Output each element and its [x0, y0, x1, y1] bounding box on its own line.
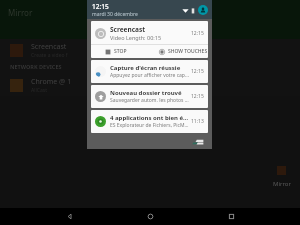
- staticText: NETWORK DEVICES: [10, 63, 62, 70]
- button[interactable]: Capture d'écran réussie: [91, 60, 208, 83]
- button[interactable]: Home: [138, 208, 162, 225]
- staticText: Screencast: [110, 25, 146, 34]
- staticText: 12:15: [191, 93, 204, 100]
- staticText: Create a video f: [31, 52, 68, 59]
- button[interactable]: Chrome @ 1: [0, 74, 300, 96]
- staticText: Capture d'écran réussie: [110, 64, 181, 72]
- button[interactable]: Clear all notifications: [192, 135, 204, 147]
- staticText: SHOW TOUCHES: [168, 48, 208, 55]
- staticText: Appuyez pour afficher votre capture d'éc…: [110, 72, 189, 79]
- staticText: Screencast: [31, 42, 67, 52]
- staticText: 12:15: [191, 30, 204, 37]
- button[interactable]: Recent apps: [219, 208, 243, 225]
- staticText: mardi 30 décembre: [92, 11, 138, 18]
- button[interactable]: Screencast: [0, 39, 300, 61]
- staticText: Chrome @ 1: [31, 77, 72, 87]
- staticText: 4 applications ont bien été mises à jour: [110, 114, 189, 122]
- button[interactable]: Screencast: [91, 21, 208, 58]
- staticText: ES Explorateur de Fichiers, PicMotion – …: [110, 122, 189, 129]
- button[interactable]: SHOW TOUCHES: [149, 45, 208, 58]
- staticText: Mirror: [8, 7, 33, 18]
- staticText: 12:15: [191, 68, 204, 75]
- staticText: Video Length: 00:15: [110, 34, 162, 41]
- staticText: Mirror: [273, 180, 291, 188]
- button[interactable]: User profile: [198, 5, 208, 15]
- staticText: STOP: [114, 48, 127, 55]
- staticText: Sauvegarder autom. les photos dans Scree…: [110, 97, 189, 104]
- button[interactable]: [277, 166, 286, 177]
- staticText: 12:15: [92, 2, 109, 11]
- staticText: Nouveau dossier trouvé: [110, 89, 182, 97]
- button[interactable]: STOP: [91, 45, 149, 58]
- staticText: AllCast: [31, 87, 47, 94]
- button[interactable]: 4 applications ont bien été mises à jour: [91, 110, 208, 133]
- button[interactable]: Back: [57, 208, 81, 225]
- button[interactable]: Nouveau dossier trouvé: [91, 85, 208, 108]
- staticText: 11:13: [191, 118, 204, 125]
